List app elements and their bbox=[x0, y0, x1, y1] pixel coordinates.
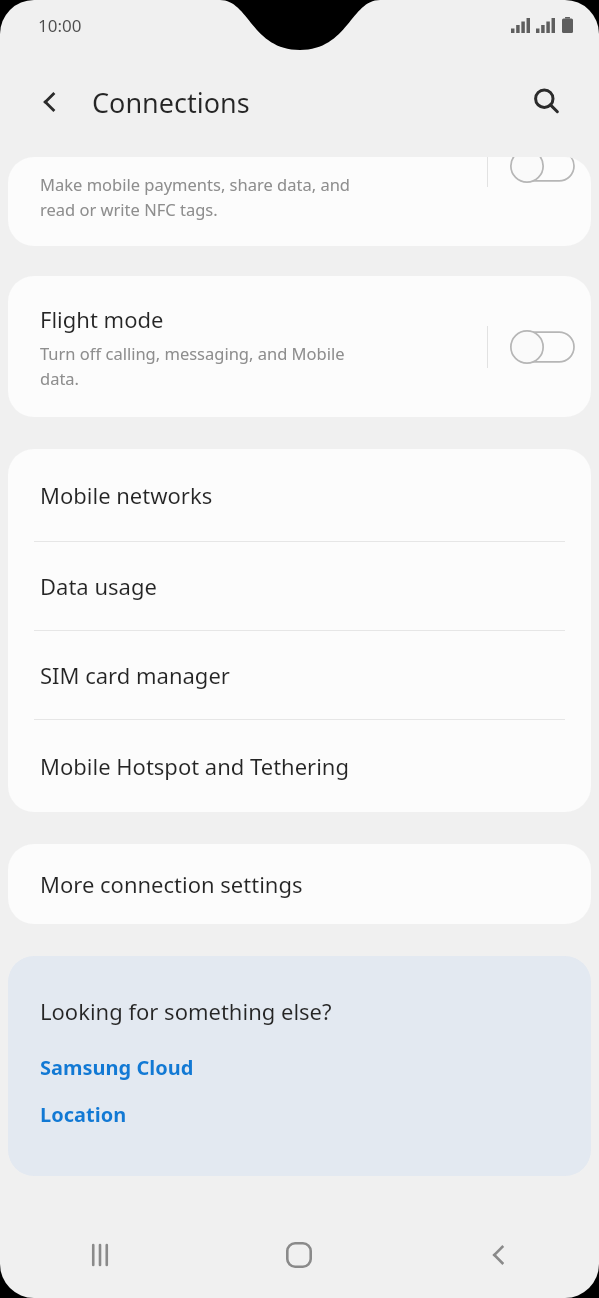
button[interactable]: Back bbox=[24, 76, 76, 128]
button[interactable]: Samsung Cloud bbox=[40, 1052, 194, 1083]
button[interactable]: Home bbox=[199, 1212, 399, 1298]
staticText: Make mobile payments, share data, and bbox=[40, 173, 350, 195]
staticText: Location bbox=[40, 1101, 127, 1128]
button[interactable]: Toggle switch, off bbox=[509, 327, 575, 367]
staticText: 10:00 bbox=[38, 14, 82, 37]
button[interactable]: SIM card manager bbox=[8, 631, 591, 719]
button[interactable]: Back bbox=[399, 1212, 599, 1298]
button[interactable]: Toggle switch, off bbox=[509, 157, 575, 186]
staticText: Flight mode bbox=[40, 304, 164, 334]
staticText: Connections bbox=[92, 84, 250, 121]
button[interactable]: Data usage bbox=[8, 542, 591, 630]
staticText: Looking for something else? bbox=[40, 996, 332, 1026]
staticText: More connection settings bbox=[40, 869, 303, 899]
staticText: Mobile networks bbox=[40, 480, 213, 510]
button[interactable]: Mobile Hotspot and Tethering bbox=[8, 720, 591, 812]
button[interactable]: Recent apps bbox=[0, 1212, 199, 1298]
button[interactable]: Flight mode bbox=[8, 276, 591, 417]
button[interactable]: Mobile networks bbox=[8, 449, 591, 541]
staticText: Turn off calling, messaging, and Mobile bbox=[40, 342, 345, 364]
staticText: read or write NFC tags. bbox=[40, 198, 218, 220]
staticText: Samsung Cloud bbox=[40, 1054, 194, 1081]
staticText: Data usage bbox=[40, 571, 157, 601]
button[interactable]: Location bbox=[40, 1099, 127, 1130]
staticText: Mobile Hotspot and Tethering bbox=[40, 751, 349, 781]
button[interactable]: More connection settings bbox=[8, 844, 591, 924]
staticText: SIM card manager bbox=[40, 660, 230, 690]
button[interactable]: Search bbox=[521, 76, 573, 128]
button[interactable]: NFC and payment bbox=[8, 157, 591, 246]
staticText: data. bbox=[40, 367, 80, 389]
